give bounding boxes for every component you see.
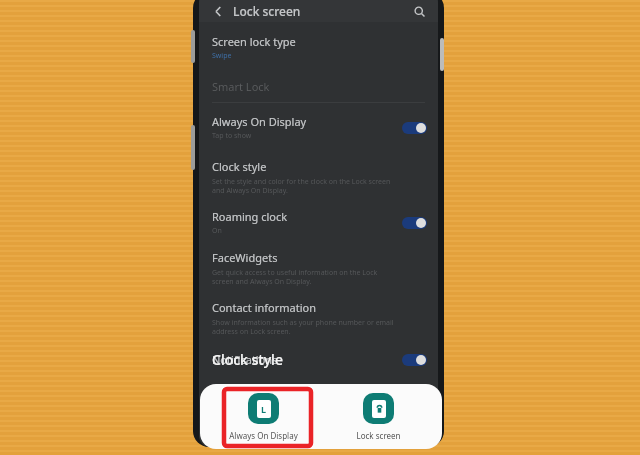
button[interactable]: Notifications — [199, 336, 438, 367]
staticText: Screen lock type — [212, 34, 296, 49]
staticText: Roaming clock — [212, 209, 288, 224]
staticText: Clock style — [212, 159, 267, 174]
staticText: FaceWidgets — [212, 250, 278, 265]
staticText: Smart Lock — [212, 79, 270, 94]
button[interactable]: Contact information — [199, 286, 438, 336]
button[interactable]: Always On Display — [199, 103, 438, 141]
button[interactable]: Smart Lock — [199, 79, 438, 94]
button[interactable]: Search — [411, 3, 427, 19]
staticText: Set the style and color for the clock on… — [212, 177, 391, 195]
button[interactable]: L — [211, 390, 316, 444]
staticText: Lock screen — [356, 430, 401, 441]
staticText: Swipe — [212, 51, 232, 61]
staticText: Lock screen — [233, 3, 301, 19]
button[interactable]: Clock style — [199, 141, 438, 195]
button[interactable]: FaceWidgets — [199, 236, 438, 286]
button[interactable]: Screen lock type — [199, 22, 438, 61]
staticText: Notifications — [212, 352, 278, 367]
staticText: Contact information — [212, 300, 316, 315]
button[interactable]: Lock screen — [326, 390, 431, 444]
staticText: L — [261, 403, 267, 415]
staticText: Get quick access to useful information o… — [212, 268, 378, 286]
staticText: Show information such as your phone numb… — [212, 318, 394, 336]
button[interactable]: Back — [210, 3, 226, 19]
button[interactable]: Roaming clock — [199, 195, 438, 236]
staticText: Clock style — [212, 350, 283, 369]
staticText: Always On Display — [229, 430, 298, 441]
staticText: On — [212, 226, 222, 236]
staticText: Always On Display — [212, 114, 307, 129]
staticText: Tap to show — [212, 131, 252, 141]
